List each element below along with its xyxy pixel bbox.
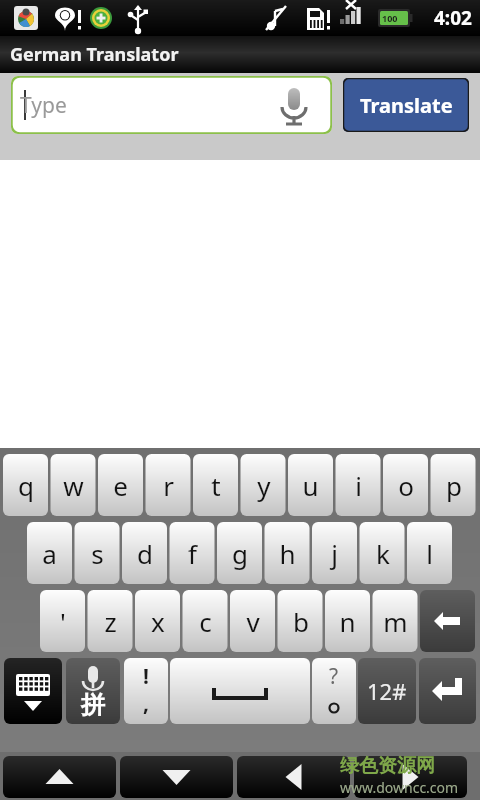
staticText: Translate bbox=[360, 92, 453, 119]
staticText: s bbox=[91, 536, 104, 571]
button[interactable]: w bbox=[51, 454, 96, 516]
button[interactable]: Hide keyboard bbox=[4, 658, 62, 724]
staticText: 拼 bbox=[81, 690, 105, 720]
staticText: k bbox=[376, 536, 390, 571]
button[interactable]: Next bbox=[354, 756, 467, 798]
button[interactable]: t bbox=[193, 454, 238, 516]
staticText: x bbox=[151, 604, 165, 639]
staticText: Type bbox=[20, 91, 67, 120]
staticText: d bbox=[137, 536, 153, 571]
button[interactable]: Space bbox=[170, 658, 310, 724]
staticText: b bbox=[293, 604, 309, 639]
button[interactable]: y bbox=[241, 454, 286, 516]
staticText: 100 bbox=[382, 12, 398, 24]
button[interactable]: Enter bbox=[419, 658, 476, 724]
button[interactable]: Translate bbox=[343, 78, 469, 132]
button[interactable]: j bbox=[312, 522, 357, 584]
staticText: a bbox=[42, 536, 57, 571]
button[interactable]: Scroll up bbox=[3, 756, 116, 798]
button[interactable]: u bbox=[288, 454, 333, 516]
staticText: ! bbox=[143, 662, 149, 691]
button[interactable]: r bbox=[146, 454, 191, 516]
staticText: z bbox=[104, 604, 117, 639]
staticText: m bbox=[383, 604, 408, 639]
button[interactable]: ' bbox=[40, 590, 85, 652]
button[interactable]: Backspace bbox=[397, 590, 452, 652]
button[interactable]: Previous bbox=[237, 756, 350, 798]
staticText: y bbox=[257, 468, 271, 503]
button[interactable]: 12# bbox=[358, 658, 416, 724]
button[interactable]: ! bbox=[124, 658, 168, 724]
staticText: p bbox=[446, 468, 462, 503]
staticText: j bbox=[331, 536, 338, 571]
button[interactable]: Scroll down bbox=[120, 756, 233, 798]
button[interactable]: i bbox=[336, 454, 381, 516]
button[interactable]: d bbox=[122, 522, 167, 584]
staticText: l bbox=[426, 536, 433, 571]
button[interactable]: g bbox=[217, 522, 262, 584]
staticText: n bbox=[339, 604, 356, 639]
staticText: v bbox=[246, 604, 260, 639]
staticText: t bbox=[211, 468, 221, 503]
staticText: , bbox=[143, 689, 149, 718]
button[interactable]: a bbox=[27, 522, 72, 584]
staticText: r bbox=[163, 468, 174, 503]
button[interactable]: q bbox=[3, 454, 48, 516]
button[interactable]: Voice input bbox=[66, 658, 120, 724]
staticText: i bbox=[355, 468, 362, 503]
button[interactable]: c bbox=[183, 590, 228, 652]
button[interactable]: m bbox=[373, 590, 418, 652]
staticText: w bbox=[63, 468, 84, 503]
staticText: h bbox=[279, 536, 296, 571]
staticText: q bbox=[18, 468, 34, 503]
staticText: ? bbox=[329, 662, 339, 691]
staticText: u bbox=[302, 468, 319, 503]
button[interactable]: b bbox=[278, 590, 323, 652]
button[interactable]: f bbox=[170, 522, 215, 584]
staticText: g bbox=[232, 536, 248, 571]
button[interactable]: s bbox=[75, 522, 120, 584]
staticText: 绿色资源网 bbox=[340, 754, 435, 778]
button[interactable]: z bbox=[88, 590, 133, 652]
button[interactable]: e bbox=[98, 454, 143, 516]
staticText: o bbox=[398, 468, 414, 503]
staticText: f bbox=[188, 536, 197, 571]
button[interactable]: h bbox=[265, 522, 310, 584]
button[interactable]: o bbox=[383, 454, 428, 516]
button[interactable]: p bbox=[431, 454, 476, 516]
button[interactable]: x bbox=[135, 590, 180, 652]
staticText: German Translator bbox=[10, 42, 179, 67]
button[interactable]: Type bbox=[11, 76, 332, 134]
staticText: e bbox=[113, 468, 128, 503]
button[interactable]: v bbox=[230, 590, 275, 652]
button[interactable]: ? bbox=[312, 658, 356, 724]
button[interactable]: k bbox=[360, 522, 405, 584]
staticText: ' bbox=[60, 604, 66, 639]
button[interactable]: n bbox=[325, 590, 370, 652]
staticText: www.downcc.com bbox=[340, 778, 459, 797]
button[interactable]: l bbox=[407, 522, 452, 584]
staticText: c bbox=[199, 604, 212, 639]
staticText: 12# bbox=[367, 676, 407, 706]
staticText: 4:02 bbox=[434, 5, 472, 31]
